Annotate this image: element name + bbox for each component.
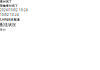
staticText: 荷物受付完了 [0,4,18,8]
staticText: 受付完了 [0,0,12,3]
staticText: 受付 [0,28,6,31]
staticText: 2024/10/02 10:24 [0,9,28,12]
staticText: 配送状況 [0,22,16,27]
staticText: Compass 配達 [0,18,20,21]
staticText: 10/02 10:24 [0,13,19,17]
